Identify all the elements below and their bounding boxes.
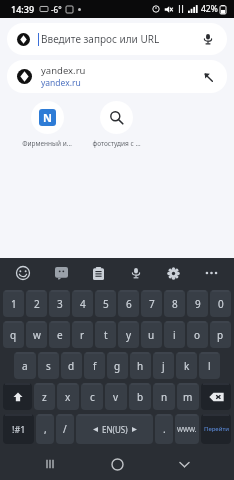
staticText: w bbox=[33, 328, 41, 342]
staticText: !#1 bbox=[12, 423, 26, 435]
button[interactable]: e bbox=[49, 321, 70, 348]
button[interactable]: i bbox=[164, 321, 185, 348]
button[interactable]: w bbox=[26, 321, 47, 348]
staticText: yandex.ru bbox=[41, 64, 86, 77]
button[interactable]: Space bbox=[76, 414, 153, 444]
button[interactable]: Settings bbox=[162, 262, 184, 284]
button[interactable]: z bbox=[34, 383, 55, 410]
button[interactable]: u bbox=[141, 321, 162, 348]
staticText: g bbox=[114, 359, 121, 373]
button[interactable]: 3 bbox=[49, 290, 70, 317]
button[interactable]: a bbox=[14, 352, 36, 379]
staticText: EN(US) bbox=[102, 424, 128, 435]
staticText: 6 bbox=[126, 297, 132, 311]
button[interactable]: WWW. bbox=[175, 414, 199, 444]
staticText: Введите запрос или URL bbox=[41, 32, 160, 46]
button[interactable]: Close keyboard bbox=[167, 448, 201, 480]
staticText: , bbox=[44, 422, 47, 436]
button[interactable]: / bbox=[56, 414, 74, 444]
button[interactable]: 7 bbox=[141, 290, 162, 317]
staticText: Фирменный и… bbox=[22, 139, 72, 148]
button[interactable]: , bbox=[36, 414, 54, 444]
staticText: 9 bbox=[195, 297, 201, 311]
staticText: yandex.ru bbox=[41, 77, 81, 89]
staticText: 8 bbox=[172, 297, 178, 311]
button[interactable]: Перейти bbox=[201, 414, 231, 444]
button[interactable]: 5 bbox=[95, 290, 116, 317]
button[interactable]: Voice input bbox=[125, 262, 147, 284]
button[interactable]: f bbox=[84, 352, 105, 379]
staticText: p bbox=[217, 328, 224, 342]
button[interactable]: k bbox=[176, 352, 197, 379]
button[interactable]: p bbox=[210, 321, 231, 348]
button[interactable]: Home bbox=[100, 448, 134, 480]
staticText: r bbox=[80, 328, 85, 342]
button[interactable]: 0 bbox=[210, 290, 231, 317]
button[interactable]: j bbox=[153, 352, 174, 379]
button[interactable]: b bbox=[129, 383, 151, 410]
button[interactable]: c bbox=[81, 383, 103, 410]
button[interactable]: o bbox=[187, 321, 208, 348]
button[interactable]: Insert suggestion bbox=[199, 68, 217, 86]
button[interactable]: emoji bbox=[12, 262, 34, 284]
button[interactable]: Shift bbox=[3, 383, 32, 410]
button[interactable]: 6 bbox=[118, 290, 139, 317]
other: Yandex bbox=[17, 33, 30, 46]
button[interactable]: n bbox=[153, 383, 175, 410]
staticText: t bbox=[104, 328, 108, 342]
staticText: a bbox=[22, 359, 28, 373]
staticText: фотостудия с … bbox=[92, 139, 141, 148]
staticText: 5 bbox=[103, 297, 109, 311]
button[interactable]: Stickers bbox=[50, 262, 72, 284]
staticText: v bbox=[113, 390, 119, 404]
button[interactable]: g bbox=[107, 352, 128, 379]
button[interactable]: r bbox=[72, 321, 93, 348]
button[interactable]: yandex.ru bbox=[7, 60, 227, 93]
button[interactable]: l bbox=[199, 352, 220, 379]
button[interactable]: 2 bbox=[26, 290, 47, 317]
button[interactable]: Yandex bbox=[7, 23, 227, 55]
staticText: j bbox=[162, 359, 165, 373]
staticText: Перейти bbox=[204, 425, 229, 433]
button[interactable]: t bbox=[95, 321, 116, 348]
button[interactable]: 9 bbox=[187, 290, 208, 317]
button[interactable]: q bbox=[3, 321, 24, 348]
staticText: h bbox=[137, 359, 144, 373]
button[interactable]: h bbox=[130, 352, 151, 379]
button[interactable]: 1 bbox=[3, 290, 24, 317]
button[interactable]: Backspace bbox=[201, 383, 231, 410]
staticText: 1 bbox=[11, 297, 17, 311]
button[interactable]: s bbox=[38, 352, 59, 379]
button[interactable]: N bbox=[18, 101, 76, 148]
staticText: n bbox=[161, 390, 168, 404]
button[interactable]: !#1 bbox=[3, 414, 34, 444]
staticText: b bbox=[137, 390, 144, 404]
button[interactable]: d bbox=[61, 352, 82, 379]
staticText: e bbox=[57, 328, 63, 342]
staticText: k bbox=[184, 359, 190, 373]
button[interactable]: m bbox=[177, 383, 199, 410]
button[interactable]: 8 bbox=[164, 290, 185, 317]
staticText: o bbox=[194, 328, 201, 342]
staticText: l bbox=[208, 359, 211, 373]
staticText: 4 bbox=[80, 297, 86, 311]
button[interactable]: y bbox=[118, 321, 139, 348]
button[interactable]: v bbox=[105, 383, 127, 410]
staticText: -6° bbox=[51, 4, 62, 15]
staticText: 3 bbox=[57, 297, 63, 311]
button[interactable]: . bbox=[155, 414, 173, 444]
button[interactable]: фотостудия с … bbox=[87, 101, 145, 148]
staticText: WWW. bbox=[177, 425, 197, 434]
staticText: u bbox=[148, 328, 155, 342]
staticText: c bbox=[90, 390, 95, 404]
staticText: y bbox=[126, 328, 132, 342]
button[interactable]: 4 bbox=[72, 290, 93, 317]
staticText: s bbox=[46, 359, 51, 373]
button[interactable]: More bbox=[200, 262, 222, 284]
button[interactable]: Clipboard bbox=[87, 262, 109, 284]
staticText: N bbox=[43, 110, 52, 125]
button[interactable]: Voice search bbox=[199, 30, 217, 48]
button[interactable]: x bbox=[57, 383, 79, 410]
button[interactable]: Recents bbox=[33, 448, 67, 480]
staticText: / bbox=[63, 422, 67, 436]
